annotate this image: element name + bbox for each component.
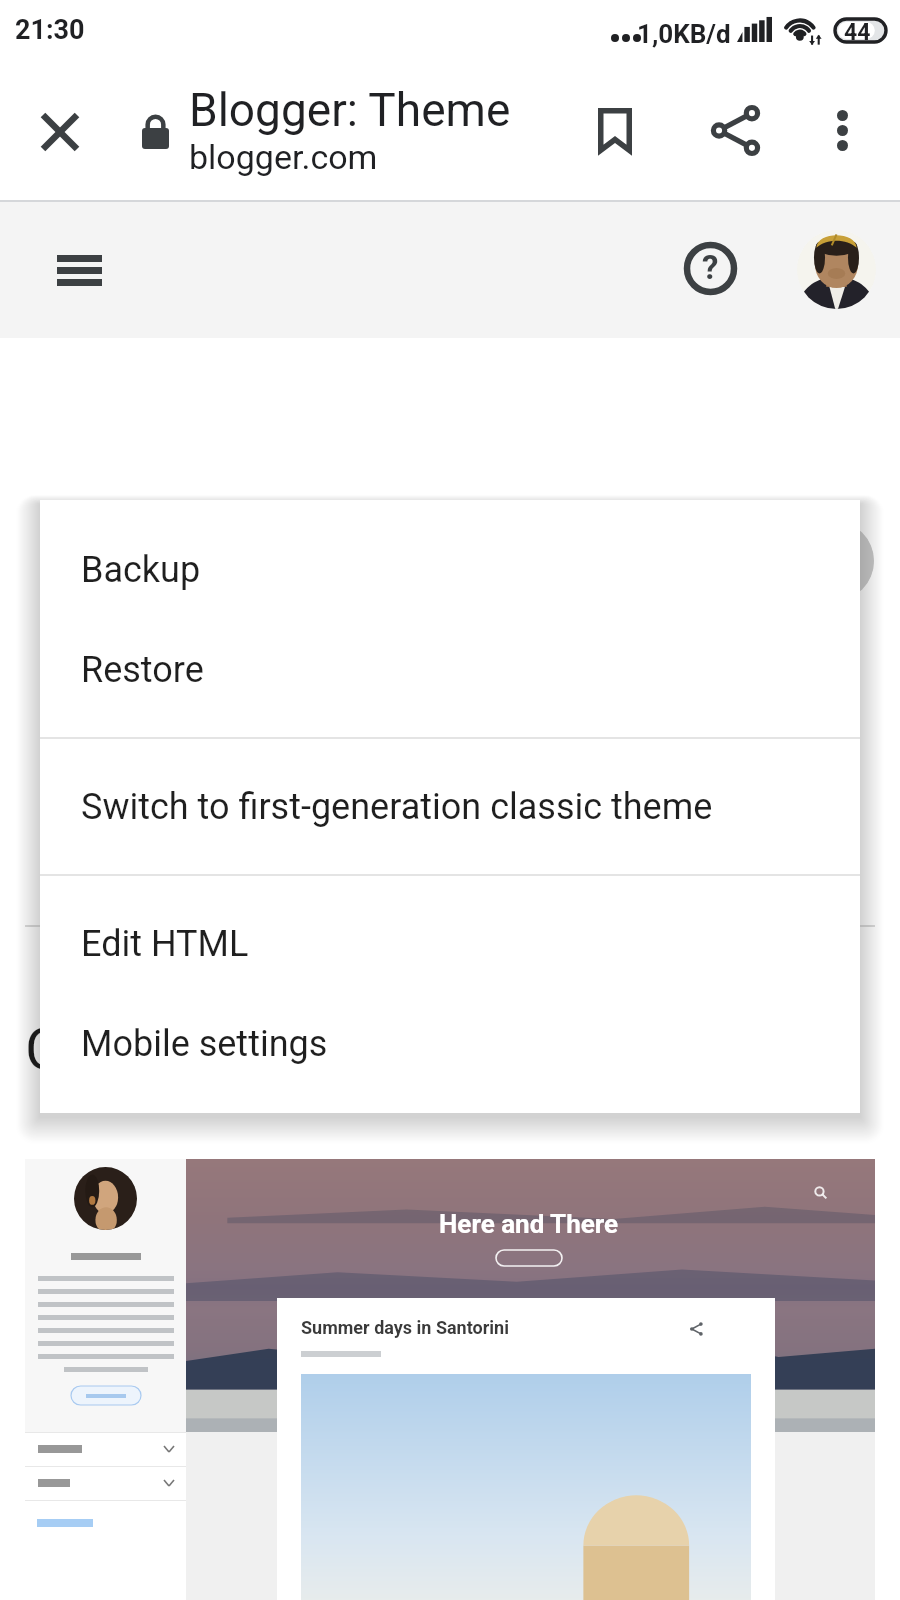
button[interactable]: Mobile settings [40, 994, 860, 1094]
staticText: Customise [25, 1015, 302, 1083]
staticText: Here and There [439, 1209, 619, 1239]
button[interactable]: Share post [683, 1316, 709, 1342]
button[interactable]: Backup [40, 520, 860, 620]
button[interactable]: Bookmark [567, 82, 663, 178]
button[interactable]: Close [16, 88, 104, 176]
staticText: 1,0KB/d [637, 19, 731, 49]
staticText: ? [702, 248, 719, 287]
staticText: 44 [844, 19, 871, 42]
staticText: Blogger: Theme [189, 83, 511, 137]
button[interactable]: Share [687, 82, 783, 178]
staticText: Edit HTML [81, 923, 249, 965]
staticText: blogger.com [189, 137, 378, 177]
button[interactable]: Switch to first-generation classic theme [40, 739, 860, 874]
staticText: Mobile settings [81, 1023, 328, 1065]
staticText: Summer days in Santorini [301, 1317, 509, 1338]
button[interactable]: Restore [40, 620, 860, 720]
button[interactable]: Archive [25, 1432, 186, 1466]
staticText: Backup [81, 549, 201, 591]
staticText: 21:30 [15, 14, 85, 46]
button[interactable]: Help [672, 230, 748, 306]
button[interactable]: Main menu [42, 233, 117, 308]
staticText: Switch to first-generation classic theme [81, 786, 713, 828]
button[interactable]: Account [797, 230, 876, 309]
button[interactable]: Edit HTML [40, 894, 860, 994]
button[interactable]: Search blog [808, 1180, 833, 1205]
button[interactable]: More options [794, 82, 890, 178]
staticText: Restore [81, 649, 204, 691]
button[interactable]: Preview [794, 521, 874, 601]
button[interactable]: Labels [25, 1466, 186, 1500]
